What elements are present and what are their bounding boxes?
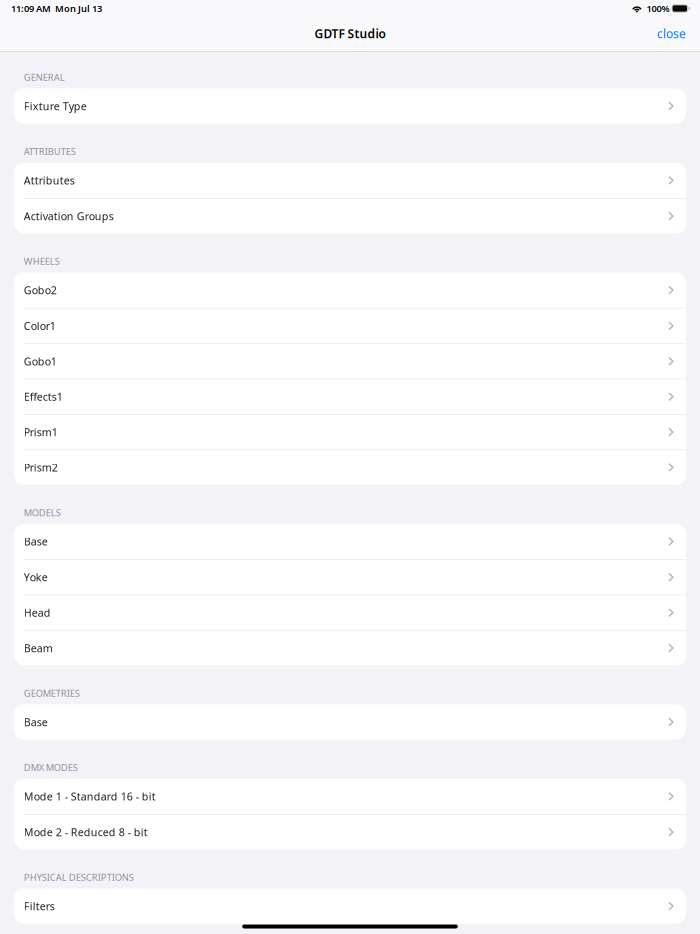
button[interactable]: Activation Groups (14, 198, 686, 233)
staticText: 11:09 AM (11, 2, 51, 15)
staticText: PHYSICAL DESCRIPTIONS (24, 871, 134, 883)
staticText: Beam (24, 641, 53, 655)
staticText: close (657, 25, 686, 41)
staticText: Attributes (24, 173, 75, 187)
button[interactable]: Prism1 (14, 414, 686, 449)
staticText: Base (24, 534, 48, 549)
button[interactable]: Mode 2 - Reduced 8 - bit (14, 814, 686, 849)
button[interactable]: Base (14, 524, 686, 559)
staticText: ATTRIBUTES (24, 145, 76, 158)
staticText: Gobo2 (24, 283, 57, 297)
staticText: Base (24, 715, 48, 729)
staticText: WHEELS (24, 255, 60, 267)
button[interactable]: Gobo2 (14, 272, 686, 308)
staticText: Yoke (24, 570, 48, 584)
staticText: Activation Groups (24, 209, 114, 223)
button[interactable]: Filters (14, 888, 686, 924)
button[interactable]: close (643, 17, 700, 50)
staticText: GENERAL (24, 71, 65, 83)
staticText: MODELS (24, 506, 61, 519)
staticText: GDTF Studio (314, 25, 385, 41)
staticText: DMX MODES (24, 761, 78, 774)
staticText: Mode 1 - Standard 16 - bit (24, 789, 156, 803)
button[interactable]: Color1 (14, 308, 686, 343)
button[interactable]: Gobo1 (14, 343, 686, 379)
button[interactable]: Base (14, 704, 686, 740)
staticText: Prism2 (24, 460, 58, 475)
button[interactable]: Head (14, 594, 686, 630)
button[interactable]: Fixture Type (14, 88, 686, 124)
staticText: Gobo1 (24, 354, 57, 368)
button[interactable]: Beam (14, 630, 686, 665)
button[interactable]: Prism2 (14, 449, 686, 485)
button[interactable]: Mode 1 - Standard 16 - bit (14, 779, 686, 814)
staticText: Mode 2 - Reduced 8 - bit (24, 825, 148, 839)
button[interactable]: Yoke (14, 559, 686, 594)
button[interactable]: Attributes (14, 163, 686, 198)
staticText: Head (24, 605, 51, 620)
staticText: Color1 (24, 319, 56, 333)
staticText: Effects1 (24, 390, 63, 404)
staticText: Filters (24, 899, 55, 913)
button[interactable]: Effects1 (14, 379, 686, 414)
staticText: GEOMETRIES (24, 687, 80, 699)
staticText: Mon Jul 13 (55, 2, 102, 15)
staticText: Fixture Type (24, 99, 87, 113)
staticText: 100% (646, 2, 669, 15)
staticText: Prism1 (24, 425, 58, 439)
